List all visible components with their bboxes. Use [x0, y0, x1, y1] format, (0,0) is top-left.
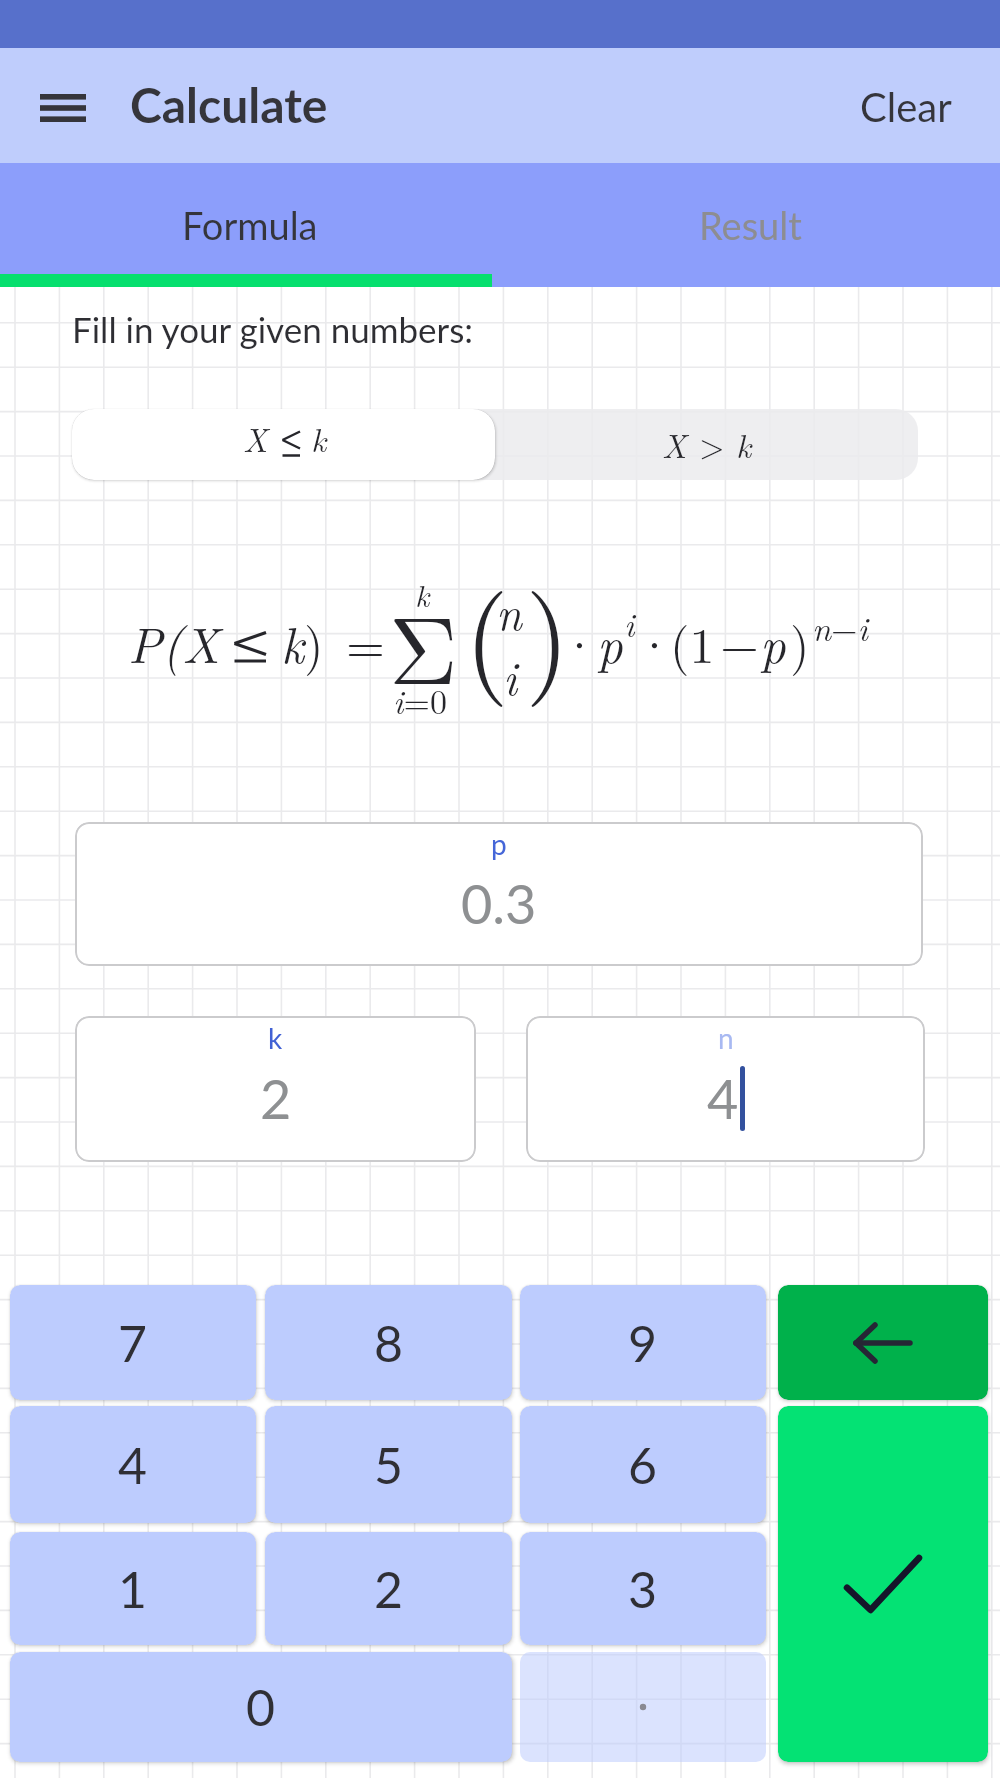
staticText: ( — [464, 547, 510, 711]
staticText: 3 — [628, 1559, 658, 1619]
button[interactable]: 4 — [10, 1406, 256, 1523]
button[interactable] — [520, 1652, 766, 1762]
staticText: 4 — [118, 1435, 148, 1495]
button[interactable]: Result — [500, 163, 1000, 287]
staticText: p — [760, 607, 786, 678]
staticText: ) — [304, 607, 324, 678]
button[interactable]: 9 — [520, 1285, 766, 1400]
button[interactable]: 2 — [265, 1532, 512, 1645]
button[interactable]: 0 — [10, 1652, 512, 1762]
button[interactable]: 1 — [10, 1532, 256, 1645]
button[interactable] — [778, 1406, 988, 1762]
staticText: i=0 — [393, 676, 447, 724]
button[interactable]: 5 — [265, 1406, 512, 1523]
staticText: 9 — [628, 1313, 658, 1373]
staticText: k — [736, 421, 752, 468]
staticText: (1 — [670, 607, 715, 678]
staticText: p — [597, 607, 623, 678]
staticText: k — [311, 415, 327, 462]
staticText: 2 — [374, 1559, 404, 1619]
button[interactable]: 7 — [10, 1285, 256, 1400]
staticText: n — [496, 578, 522, 643]
staticText: ) — [525, 547, 571, 711]
button[interactable]: Clear — [860, 83, 952, 131]
button[interactable]: k — [75, 1016, 476, 1162]
staticText: Σ — [389, 577, 458, 712]
button[interactable]: Formula — [0, 163, 500, 287]
staticText: Calculate — [130, 76, 328, 134]
button[interactable]: X — [495, 409, 918, 480]
button[interactable]: 6 — [520, 1406, 766, 1523]
staticText: i — [503, 643, 518, 708]
staticText: Formula — [182, 202, 318, 248]
button[interactable]: n — [526, 1016, 925, 1162]
staticText: · — [635, 607, 674, 678]
staticText: Fill in your given numbers: — [72, 308, 474, 350]
staticText: 1 — [118, 1559, 148, 1619]
button[interactable]: 3 — [520, 1532, 766, 1645]
staticText: k — [415, 572, 430, 616]
button[interactable] — [40, 94, 86, 122]
staticText: − — [720, 607, 759, 678]
staticText: · — [560, 607, 599, 678]
staticText: 2 — [260, 1066, 292, 1131]
staticText: P(X — [128, 607, 220, 678]
staticText: 6 — [628, 1435, 658, 1495]
staticText: Result — [699, 202, 802, 248]
staticText: ) — [790, 607, 810, 678]
staticText: Clear — [860, 83, 952, 131]
button[interactable]: p — [75, 822, 923, 966]
staticText: = — [346, 607, 385, 678]
staticText: > — [699, 421, 736, 468]
staticText: 5 — [374, 1435, 404, 1495]
staticText: X — [662, 421, 699, 468]
button[interactable] — [778, 1285, 988, 1400]
staticText: 4 — [707, 1066, 739, 1131]
button[interactable]: 8 — [265, 1285, 512, 1400]
staticText: 7 — [118, 1313, 148, 1373]
staticText: 0 — [246, 1677, 276, 1737]
button[interactable] — [72, 409, 495, 480]
staticText: 0.3 — [461, 871, 537, 936]
staticText: X — [243, 415, 268, 462]
staticText: n−i — [812, 603, 868, 651]
staticText: k — [268, 1021, 283, 1055]
staticText: n — [718, 1021, 734, 1055]
staticText: k — [281, 607, 304, 678]
staticText: 8 — [374, 1313, 404, 1373]
staticText: i — [624, 599, 635, 647]
staticText: p — [491, 827, 507, 861]
